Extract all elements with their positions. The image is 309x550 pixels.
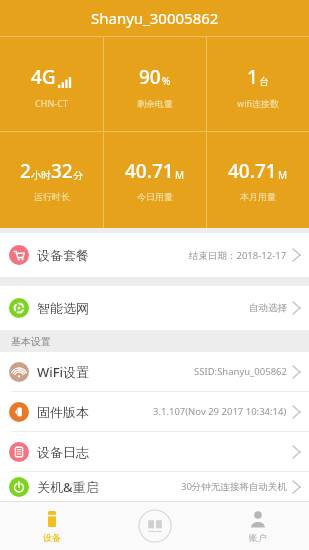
staticText: 4G [31, 64, 56, 90]
staticText: 3.1.107(Nov 29 2017 10:34:14) [153, 405, 287, 418]
staticText: 固件版本 [37, 404, 89, 420]
staticText: SSID:Shanyu_005862 [194, 365, 287, 378]
staticText: M [175, 168, 185, 182]
button[interactable]: 智能选网 [0, 286, 309, 330]
staticText: 账户 [249, 532, 267, 543]
staticText: % [162, 74, 171, 88]
staticText: 40.71 [228, 158, 277, 184]
staticText: 基本设置 [11, 335, 51, 348]
staticText: 设备套餐 [37, 247, 89, 263]
staticText: M [278, 168, 288, 182]
staticText: 运行时长 [34, 191, 70, 202]
staticText: 30分钟无连接将自动关机 [181, 480, 287, 493]
staticText: CHN-CT [35, 97, 68, 109]
button[interactable]: 关机&重启 [0, 472, 309, 501]
staticText: Shanyu_30005862 [91, 8, 219, 28]
staticText: 1 [247, 64, 258, 90]
staticText: 32 [51, 158, 73, 184]
staticText: 90 [139, 64, 161, 90]
button[interactable]: 闪鱼 [103, 501, 206, 550]
button[interactable]: 设备 [0, 501, 103, 550]
staticText: 设备 [43, 532, 61, 543]
staticText: 结束日期：2018-12-17 [189, 249, 287, 262]
staticText: 今日用量 [137, 191, 173, 202]
staticText: 智能选网 [37, 300, 89, 316]
button[interactable]: 账户 [206, 501, 309, 550]
staticText: 剩余电量 [137, 98, 173, 109]
staticText: wifi连接数 [237, 97, 279, 109]
staticText: 2 [20, 158, 31, 184]
staticText: 自动选择 [249, 302, 287, 314]
staticText: 关机&重启 [37, 478, 99, 496]
staticText: WiFi设置 [37, 363, 90, 381]
staticText: 台 [259, 75, 269, 88]
staticText: 本月用量 [240, 191, 276, 202]
staticText: 分 [73, 169, 83, 182]
staticText: 设备日志 [37, 444, 89, 460]
staticText: 小时 [31, 169, 51, 182]
button[interactable]: 固件版本 [0, 392, 309, 431]
button[interactable]: WiFi设置 [0, 352, 309, 391]
button[interactable]: 设备套餐 [0, 233, 309, 277]
button[interactable]: 设备日志 [0, 432, 309, 471]
staticText: 40.71 [125, 158, 174, 184]
